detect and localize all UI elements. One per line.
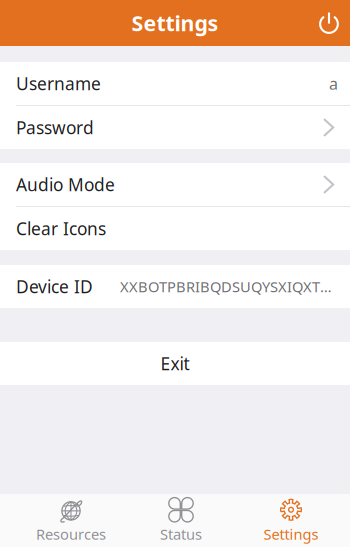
button[interactable]: Resources <box>16 494 126 547</box>
button[interactable]: Power <box>308 0 350 46</box>
staticText: Settings <box>131 9 218 37</box>
staticText: Exit <box>160 352 189 375</box>
staticText: Status <box>160 524 202 544</box>
button[interactable]: Audio Mode <box>0 163 350 206</box>
button[interactable]: Username <box>0 62 350 105</box>
staticText: Audio Mode <box>16 173 115 196</box>
button[interactable]: Device ID <box>0 265 350 308</box>
button[interactable]: Exit <box>0 342 350 385</box>
staticText: Username <box>16 72 101 95</box>
button[interactable]: Settings <box>236 494 346 547</box>
staticText: Password <box>16 116 94 139</box>
button[interactable]: Status <box>126 494 236 547</box>
staticText: Settings <box>263 524 318 544</box>
staticText: a <box>329 73 338 94</box>
button[interactable]: Password <box>0 106 350 149</box>
staticText: Resources <box>36 524 106 544</box>
button[interactable]: Clear Icons <box>0 207 350 250</box>
staticText: Device ID <box>16 275 93 298</box>
staticText: Clear Icons <box>16 217 106 240</box>
staticText: XXBOTPBRIBQDSUQYSXIQXTFPR… <box>120 277 339 296</box>
